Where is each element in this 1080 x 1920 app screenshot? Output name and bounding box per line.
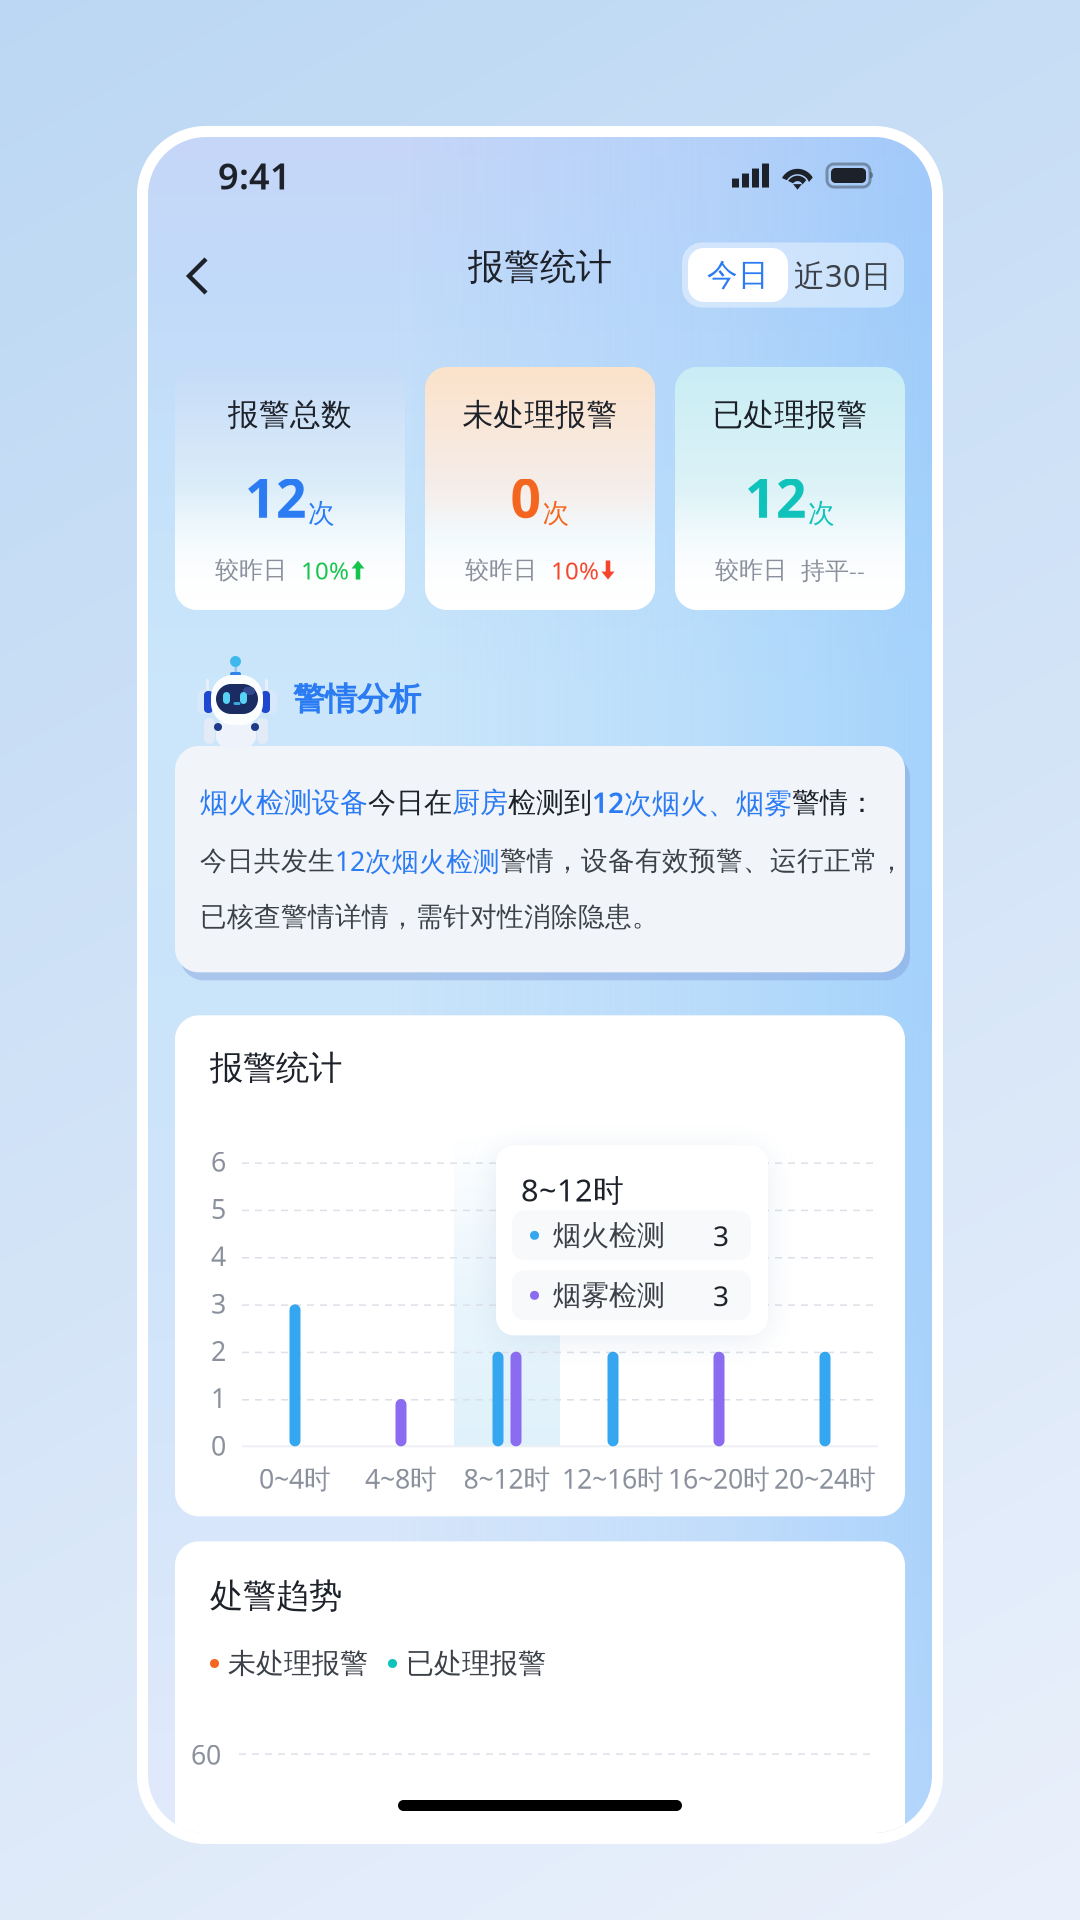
staticText: 未处理报警 [462, 396, 617, 434]
staticText: 10% [551, 554, 599, 586]
staticText: 报警总数 [228, 396, 352, 434]
staticText: 较昨日 [215, 555, 287, 585]
staticText: 报警统计 [210, 1047, 342, 1088]
staticText: 0~4时 [259, 1461, 331, 1496]
staticText: 10% [301, 554, 349, 586]
staticText: 12次烟火、烟雾 [592, 784, 792, 821]
staticText: 20~24时 [774, 1461, 876, 1496]
staticText: 报警统计 [468, 245, 612, 289]
staticText: 8~12时 [463, 1461, 550, 1496]
staticText: 3 [211, 1286, 226, 1321]
staticText: 较昨日 [465, 555, 537, 585]
staticText: 1 [211, 1380, 226, 1416]
button[interactable]: 报警总数 [175, 367, 405, 610]
staticText: 12次烟火检测 [335, 843, 500, 879]
staticText: 4 [211, 1238, 226, 1274]
staticText: 警情，设备有效预警、运行正常， [500, 844, 905, 877]
button[interactable]: 未处理报警 [425, 367, 655, 610]
staticText: 60 [191, 1737, 221, 1772]
staticText: 2 [211, 1333, 226, 1368]
staticText: 警情： [792, 785, 876, 820]
staticText: 0 [211, 1428, 226, 1463]
staticText: 处警趋势 [210, 1575, 342, 1616]
staticText: 未处理报警 [228, 1646, 368, 1681]
staticText: 次 [308, 497, 335, 529]
staticText: 近30日 [794, 255, 892, 295]
staticText: 次 [808, 497, 835, 529]
staticText: 16~20时 [668, 1461, 770, 1496]
staticText: 今日共发生 [200, 844, 335, 877]
staticText: 烟雾检测 [553, 1278, 665, 1313]
staticText: 12 [245, 462, 307, 532]
staticText: 今日在 [368, 785, 452, 820]
staticText: 4~8时 [365, 1461, 437, 1496]
staticText: 已核查警情详情，需针对性消除隐患。 [200, 901, 659, 933]
staticText: 检测到 [508, 785, 592, 820]
button[interactable]: 已处理报警 [675, 367, 905, 610]
staticText: 已处理报警 [406, 1646, 546, 1681]
staticText: 3 [713, 1217, 729, 1254]
staticText: 持平-- [801, 554, 865, 586]
staticText: 烟火检测设备 [200, 785, 368, 820]
staticText: 厨房 [452, 785, 508, 820]
staticText: 烟火检测 [553, 1218, 665, 1253]
staticText: 较昨日 [715, 555, 787, 585]
staticText: 已处理报警 [712, 396, 867, 434]
staticText: 12 [745, 462, 807, 532]
staticText: 0 [510, 462, 541, 532]
staticText: 警情分析 [293, 679, 421, 719]
staticText: 12~16时 [562, 1461, 664, 1496]
staticText: 9:41 [218, 152, 291, 199]
button[interactable]: 今日 [688, 248, 788, 302]
button[interactable]: 近30日 [788, 248, 898, 302]
staticText: 今日 [707, 256, 769, 294]
button[interactable]: Back [178, 234, 233, 300]
staticText: 6 [211, 1144, 226, 1179]
staticText: 8~12时 [521, 1169, 624, 1210]
staticText: 次 [542, 497, 569, 529]
staticText: 5 [211, 1191, 226, 1226]
staticText: 3 [713, 1277, 729, 1314]
